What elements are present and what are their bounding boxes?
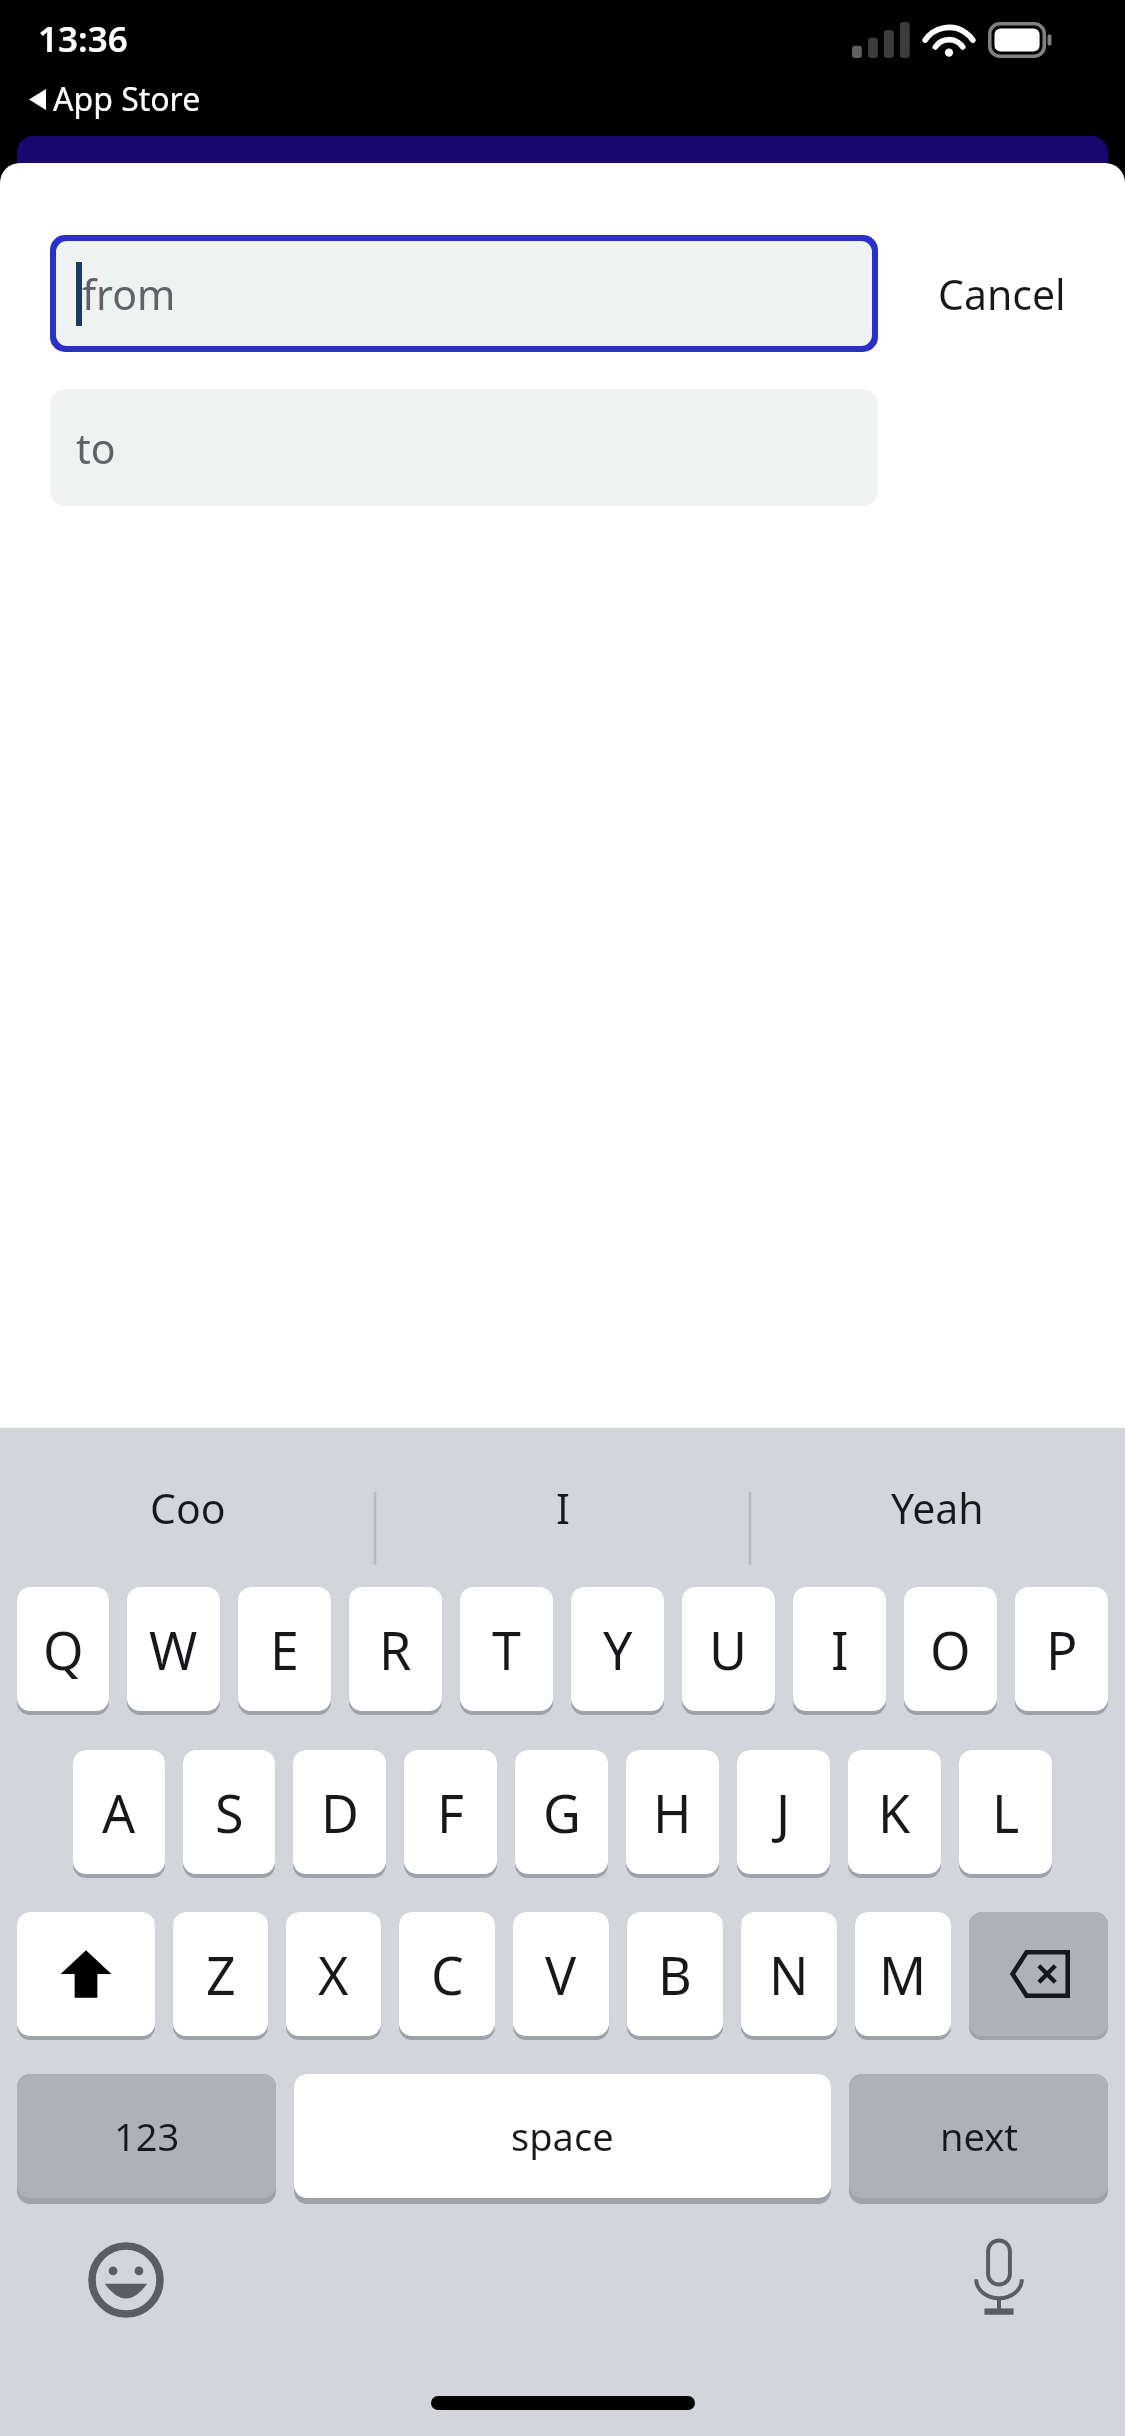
button[interactable]: Q (17, 1587, 109, 1711)
button[interactable]: J (737, 1750, 830, 1874)
staticText: 13:36 (38, 15, 128, 63)
staticText: Coo (150, 1480, 226, 1536)
staticText: B (658, 1939, 692, 2010)
button[interactable]: P (1015, 1587, 1108, 1711)
staticText: L (992, 1777, 1020, 1848)
staticText: S (215, 1777, 244, 1848)
staticText: G (543, 1777, 581, 1848)
staticText: I (556, 1480, 570, 1536)
button[interactable]: Backspace (969, 1912, 1108, 2036)
button[interactable]: from (50, 235, 878, 352)
button[interactable]: I (375, 1428, 750, 1587)
button[interactable]: R (349, 1587, 442, 1711)
staticText: space (511, 2110, 614, 2162)
staticText: Yeah (891, 1480, 984, 1536)
staticText: M (879, 1939, 927, 2010)
button[interactable]: M (855, 1912, 951, 2036)
staticText: E (270, 1614, 299, 1685)
button[interactable]: Voice input (960, 2238, 1038, 2316)
button[interactable]: F (404, 1750, 497, 1874)
button[interactable]: S (183, 1750, 275, 1874)
button[interactable]: Coo (0, 1428, 375, 1587)
button[interactable]: X (286, 1912, 381, 2036)
button[interactable]: Yeah (750, 1428, 1125, 1587)
button[interactable]: Shift (17, 1912, 155, 2036)
button[interactable]: Y (571, 1587, 664, 1711)
button[interactable]: W (127, 1587, 220, 1711)
button[interactable]: H (626, 1750, 719, 1874)
button[interactable]: A (73, 1750, 165, 1874)
staticText: K (878, 1777, 911, 1848)
staticText: J (776, 1777, 791, 1848)
staticText: D (321, 1777, 359, 1848)
button[interactable]: B (627, 1912, 723, 2036)
button[interactable]: L (959, 1750, 1052, 1874)
button[interactable]: next (849, 2074, 1108, 2198)
button[interactable]: App Store (29, 77, 201, 121)
staticText: P (1046, 1614, 1078, 1685)
button[interactable]: G (515, 1750, 608, 1874)
staticText: X (318, 1939, 349, 2010)
staticText: App Store (53, 77, 201, 121)
staticText: N (769, 1939, 809, 2010)
staticText: U (709, 1614, 748, 1685)
button[interactable]: to (50, 389, 878, 506)
button[interactable]: V (513, 1912, 609, 2036)
staticText: to (76, 420, 116, 476)
staticText: next (940, 2110, 1018, 2162)
button[interactable]: Emoji keyboard (88, 2242, 164, 2318)
button[interactable]: Cancel (878, 235, 1125, 352)
staticText: C (431, 1939, 464, 2010)
button[interactable]: I (793, 1587, 886, 1711)
button[interactable]: E (238, 1587, 331, 1711)
button[interactable]: D (293, 1750, 386, 1874)
button[interactable]: O (904, 1587, 997, 1711)
staticText: Cancel (938, 266, 1066, 322)
staticText: A (102, 1777, 136, 1848)
staticText: O (930, 1614, 971, 1685)
staticText: I (831, 1614, 849, 1685)
button[interactable]: space (294, 2074, 831, 2198)
button[interactable]: K (848, 1750, 941, 1874)
button[interactable]: Z (173, 1912, 268, 2036)
staticText: 123 (114, 2110, 180, 2162)
button[interactable]: U (682, 1587, 775, 1711)
staticText: W (149, 1614, 198, 1685)
staticText: from (82, 266, 176, 322)
staticText: T (492, 1614, 521, 1685)
staticText: F (437, 1777, 464, 1848)
staticText: Q (43, 1614, 84, 1685)
button[interactable]: C (399, 1912, 495, 2036)
staticText: H (653, 1777, 692, 1848)
staticText: Y (603, 1614, 633, 1685)
staticText: V (545, 1939, 577, 2010)
button[interactable]: T (460, 1587, 553, 1711)
staticText: R (379, 1614, 412, 1685)
button[interactable]: 123 (17, 2074, 276, 2198)
button[interactable]: N (741, 1912, 837, 2036)
staticText: Z (206, 1939, 236, 2010)
